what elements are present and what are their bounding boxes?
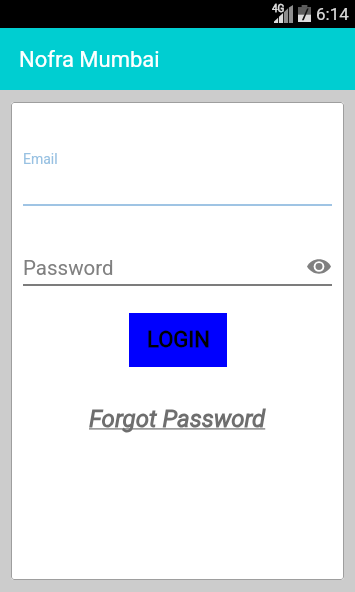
staticText: Nofra Mumbai bbox=[19, 47, 160, 73]
staticText: 6:14 bbox=[316, 4, 349, 24]
staticText: 4G bbox=[272, 3, 285, 15]
button[interactable]: Show password bbox=[302, 251, 336, 281]
staticText: Password bbox=[23, 256, 114, 280]
button[interactable]: LOGIN bbox=[129, 313, 227, 367]
button[interactable]: Forgot Password bbox=[89, 405, 266, 433]
staticText: LOGIN bbox=[147, 327, 210, 353]
staticText: Email bbox=[23, 151, 58, 167]
